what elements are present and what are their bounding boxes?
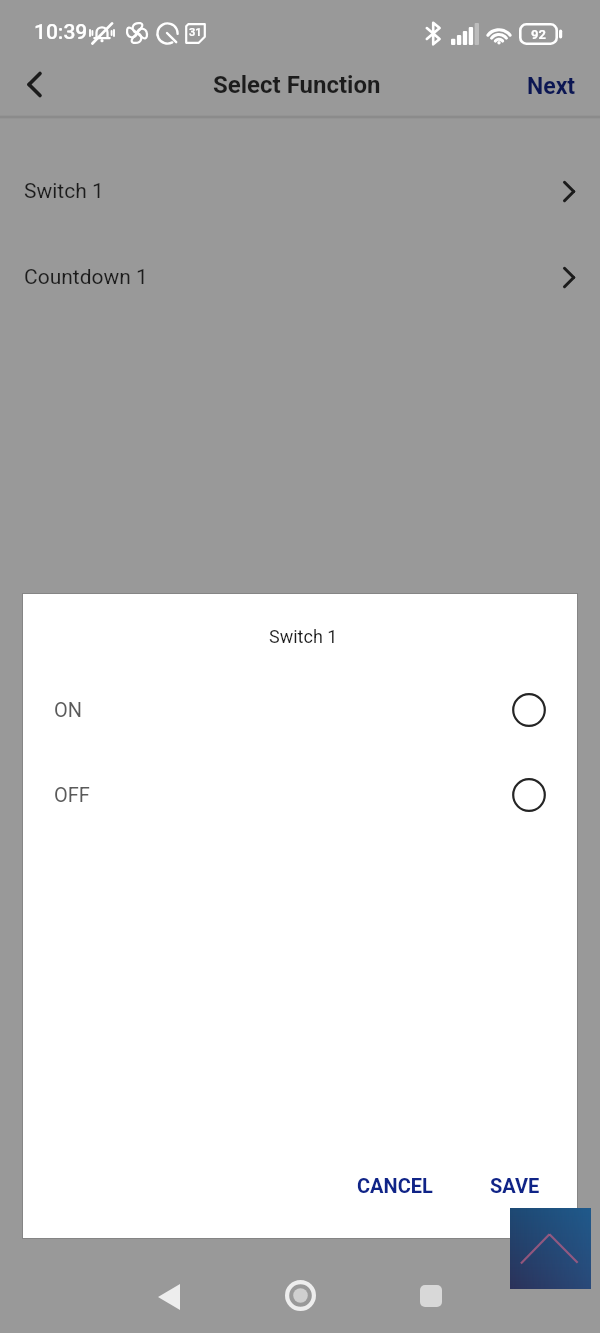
staticText: CANCEL [357,1174,433,1197]
button[interactable]: OFF [23,752,577,837]
button[interactable]: Home [270,1265,330,1325]
button[interactable]: Recents [401,1266,461,1326]
staticText: Switch 1 [269,626,338,647]
button[interactable]: ON [23,667,577,752]
staticText: 92 [531,27,546,42]
staticText: OFF [54,783,90,806]
staticText: 31 [189,26,202,39]
staticText: Switch 1 [24,179,104,204]
button[interactable]: Back [139,1267,199,1327]
button[interactable]: Back [9,56,59,112]
staticText: SAVE [490,1174,540,1197]
button[interactable]: Next [505,58,600,114]
button[interactable]: CANCEL [345,1162,445,1209]
staticText: Select Function [213,71,381,99]
staticText: 10:39 [34,20,88,45]
staticText: Next [527,73,576,100]
button[interactable]: Countdown 1 [0,235,600,320]
staticText: ON [54,698,83,721]
button[interactable]: Switch 1 [0,149,600,234]
button[interactable]: SAVE [478,1162,552,1209]
staticText: Countdown 1 [24,265,148,290]
